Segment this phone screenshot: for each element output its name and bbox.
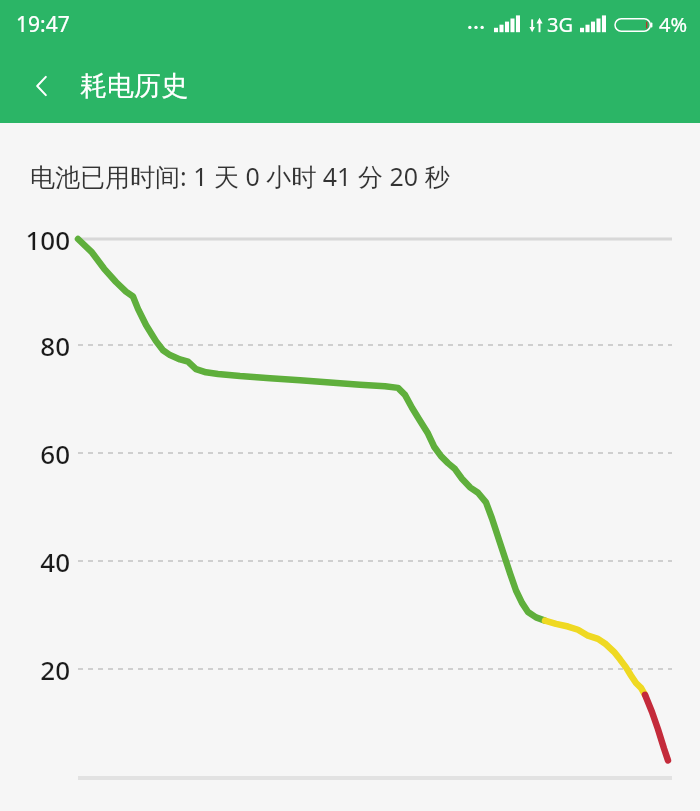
staticText: 19:47	[16, 10, 70, 39]
staticText: 电池已用时间: 1 天 0 小时 41 分 20 秒	[30, 159, 450, 193]
staticText: 4%	[659, 11, 688, 38]
button[interactable]: Back	[14, 58, 70, 114]
staticText: 3G	[547, 11, 573, 38]
staticText: 100	[25, 222, 70, 257]
staticText: 80	[40, 328, 70, 363]
staticText: 40	[40, 544, 70, 579]
staticText: 耗电历史	[80, 69, 188, 103]
staticText: 20	[40, 652, 70, 687]
staticText: 60	[40, 436, 70, 471]
